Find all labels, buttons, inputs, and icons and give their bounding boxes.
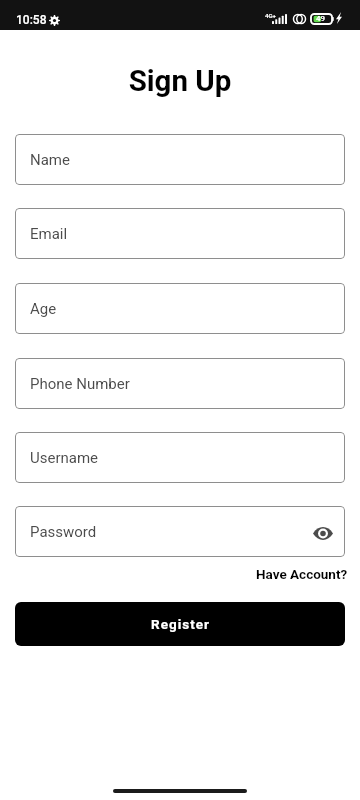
staticText: Sign Up [0, 64, 360, 99]
staticText: Register [151, 616, 210, 632]
staticText: 10:58 [16, 13, 47, 27]
button[interactable]: Phone Number [15, 358, 345, 409]
button[interactable]: Username [15, 432, 345, 483]
staticText: 4G+ [265, 12, 276, 19]
button[interactable]: Age [15, 283, 345, 334]
button[interactable]: Register [15, 602, 345, 646]
staticText: 49 [316, 14, 326, 23]
button[interactable]: Email [15, 208, 345, 259]
button[interactable]: Password [15, 506, 345, 557]
staticText: Phone Number [30, 375, 130, 393]
button[interactable]: Show password [310, 520, 336, 546]
button[interactable]: Have Account? [256, 566, 348, 582]
staticText: Password [30, 523, 97, 541]
staticText: Have Account? [256, 566, 348, 582]
staticText: Username [30, 449, 99, 467]
button[interactable]: Name [15, 134, 345, 185]
staticText: Name [30, 151, 70, 169]
staticText: Email [30, 225, 68, 243]
staticText: Age [30, 300, 57, 318]
